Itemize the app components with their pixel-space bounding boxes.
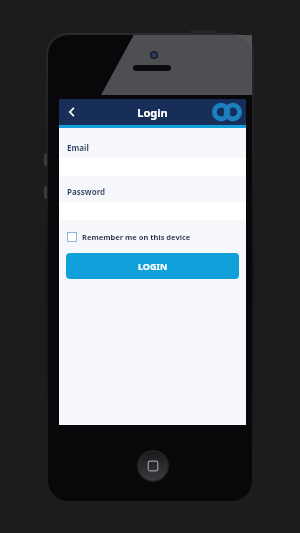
staticText: Login (137, 105, 168, 120)
staticText: Password (67, 186, 106, 197)
button[interactable]: Back (59, 99, 85, 125)
button[interactable]: LOGIN (66, 253, 239, 279)
staticText: Email (67, 142, 89, 153)
staticText: Remember me on this device (82, 232, 191, 242)
button[interactable]: Logo (212, 101, 242, 123)
button[interactable]: Remember me on this device (67, 229, 191, 245)
staticText: LOGIN (138, 260, 168, 272)
